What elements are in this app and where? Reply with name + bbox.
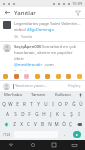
- button[interactable]: D: [19, 110, 26, 118]
- button[interactable]: A: [3, 110, 11, 118]
- button[interactable]: Ş: [68, 110, 75, 118]
- staticText: L: [63, 111, 66, 117]
- button[interactable]: S: [11, 110, 19, 118]
- staticText: Legendaries page Saint Valentine saat: [14, 21, 82, 27]
- staticText: V: [34, 121, 37, 127]
- button[interactable]: Y: [35, 100, 42, 108]
- staticText: X: [20, 121, 23, 127]
- staticText: SaçişÂpen000: [14, 44, 42, 50]
- button[interactable]: X: [18, 120, 25, 128]
- button[interactable]: Merhaba: [0, 91, 26, 99]
- button[interactable]: V: [32, 120, 39, 128]
- staticText: O: [58, 101, 62, 107]
- button[interactable]: .: [59, 130, 70, 139]
- button[interactable]: F: [26, 110, 33, 118]
- staticText: 3h Yanıtla: [14, 34, 33, 39]
- button[interactable]: Back: [0, 140, 22, 150]
- button[interactable]: Z: [11, 120, 18, 128]
- staticText: D: [21, 111, 25, 117]
- button[interactable]: Keyboard: [64, 140, 85, 150]
- button[interactable]: Emoji: [66, 74, 71, 79]
- staticText: I: [52, 101, 54, 107]
- button[interactable]: Shift: [1, 120, 11, 128]
- button[interactable]: Ç: [67, 120, 74, 128]
- button[interactable]: Emoji: [35, 74, 40, 79]
- button[interactable]: U: [42, 100, 49, 108]
- staticText: Y: [37, 101, 40, 107]
- staticText: Z: [13, 121, 16, 127]
- staticText: 10:09: [72, 1, 83, 6]
- button[interactable]: Emoji: [77, 74, 82, 79]
- button[interactable]: Emoji: [56, 74, 61, 79]
- button[interactable]: H: [40, 110, 47, 118]
- staticText: Sonraland en çok: [42, 44, 76, 50]
- button[interactable]: Legendaries page Saint Valentine saat: [0, 19, 85, 41]
- button[interactable]: Emoji: [45, 74, 50, 79]
- staticText: Kullanıcı: [55, 92, 72, 98]
- button[interactable]: L: [61, 110, 68, 118]
- staticText: Ğ: [72, 101, 76, 107]
- button[interactable]: N: [46, 120, 53, 128]
- staticText: N: [48, 121, 52, 127]
- staticText: F: [28, 111, 31, 117]
- button[interactable]: Paylaş: [67, 82, 82, 90]
- button[interactable]: SaçişÂpen000: [0, 42, 85, 73]
- staticText: .com: [43, 62, 54, 68]
- staticText: Yanıtlar: [14, 9, 36, 17]
- button[interactable]: Emoji: [24, 74, 29, 79]
- button[interactable]: Emoji: [3, 74, 8, 79]
- button[interactable]: I: [75, 110, 82, 118]
- staticText: hazırlanan, sitenin en popüler üfesi: [14, 50, 82, 62]
- staticText: Merhaba: [4, 92, 22, 98]
- button[interactable]: Recents: [43, 140, 64, 150]
- button[interactable]: E: [14, 100, 21, 108]
- button[interactable]: Q: [1, 100, 7, 108]
- staticText: S: [14, 111, 17, 117]
- button[interactable]: Voice input: [76, 91, 85, 99]
- staticText: B: [41, 121, 44, 127]
- staticText: I: [78, 111, 80, 117]
- button[interactable]: Backspace: [74, 120, 84, 128]
- button[interactable]: Filter: [71, 7, 85, 18]
- button[interactable]: Home: [22, 140, 43, 150]
- staticText: U: [44, 101, 48, 107]
- button[interactable]: R: [21, 100, 28, 108]
- staticText: K: [56, 111, 59, 117]
- staticText: @medihmodir: [14, 62, 43, 68]
- staticText: videol: [14, 27, 27, 33]
- staticText: R: [23, 101, 26, 107]
- button[interactable]: C: [25, 120, 32, 128]
- button[interactable]: T: [28, 100, 35, 108]
- staticText: .: [64, 131, 66, 138]
- button[interactable]: Send: [73, 131, 81, 138]
- button[interactable]: W: [7, 100, 14, 108]
- button[interactable]: Emoji: [14, 74, 19, 79]
- button[interactable]: Ö: [60, 120, 67, 128]
- button[interactable]: K: [54, 110, 61, 118]
- staticText: Ü: [79, 101, 83, 107]
- button[interactable]: Ü: [77, 100, 84, 108]
- button[interactable]: Tamam: [26, 91, 51, 99]
- staticText: Q: [2, 101, 6, 107]
- button[interactable]: M: [53, 120, 60, 128]
- button[interactable]: Back: [0, 7, 14, 18]
- button[interactable]: I: [49, 100, 56, 108]
- button[interactable]: J: [47, 110, 54, 118]
- button[interactable]: O: [56, 100, 63, 108]
- staticText: Ö: [62, 121, 66, 127]
- button[interactable]: B: [39, 120, 46, 128]
- button[interactable]: Kullanıcı: [51, 91, 76, 99]
- button[interactable]: Ğ: [70, 100, 77, 108]
- staticText: T: [30, 101, 33, 107]
- staticText: Tamam: [31, 92, 46, 98]
- button[interactable]: ?123: [1, 130, 13, 139]
- staticText: #EjpDomingo: [27, 27, 54, 33]
- staticText: C: [27, 121, 30, 127]
- staticText: Paylaşılıyor: [14, 69, 33, 71]
- staticText: W: [8, 101, 13, 107]
- button[interactable]: G: [33, 110, 40, 118]
- staticText: E: [16, 101, 19, 107]
- staticText: Yanıtınızı yazın...: [15, 83, 67, 89]
- button[interactable]: P: [63, 100, 70, 108]
